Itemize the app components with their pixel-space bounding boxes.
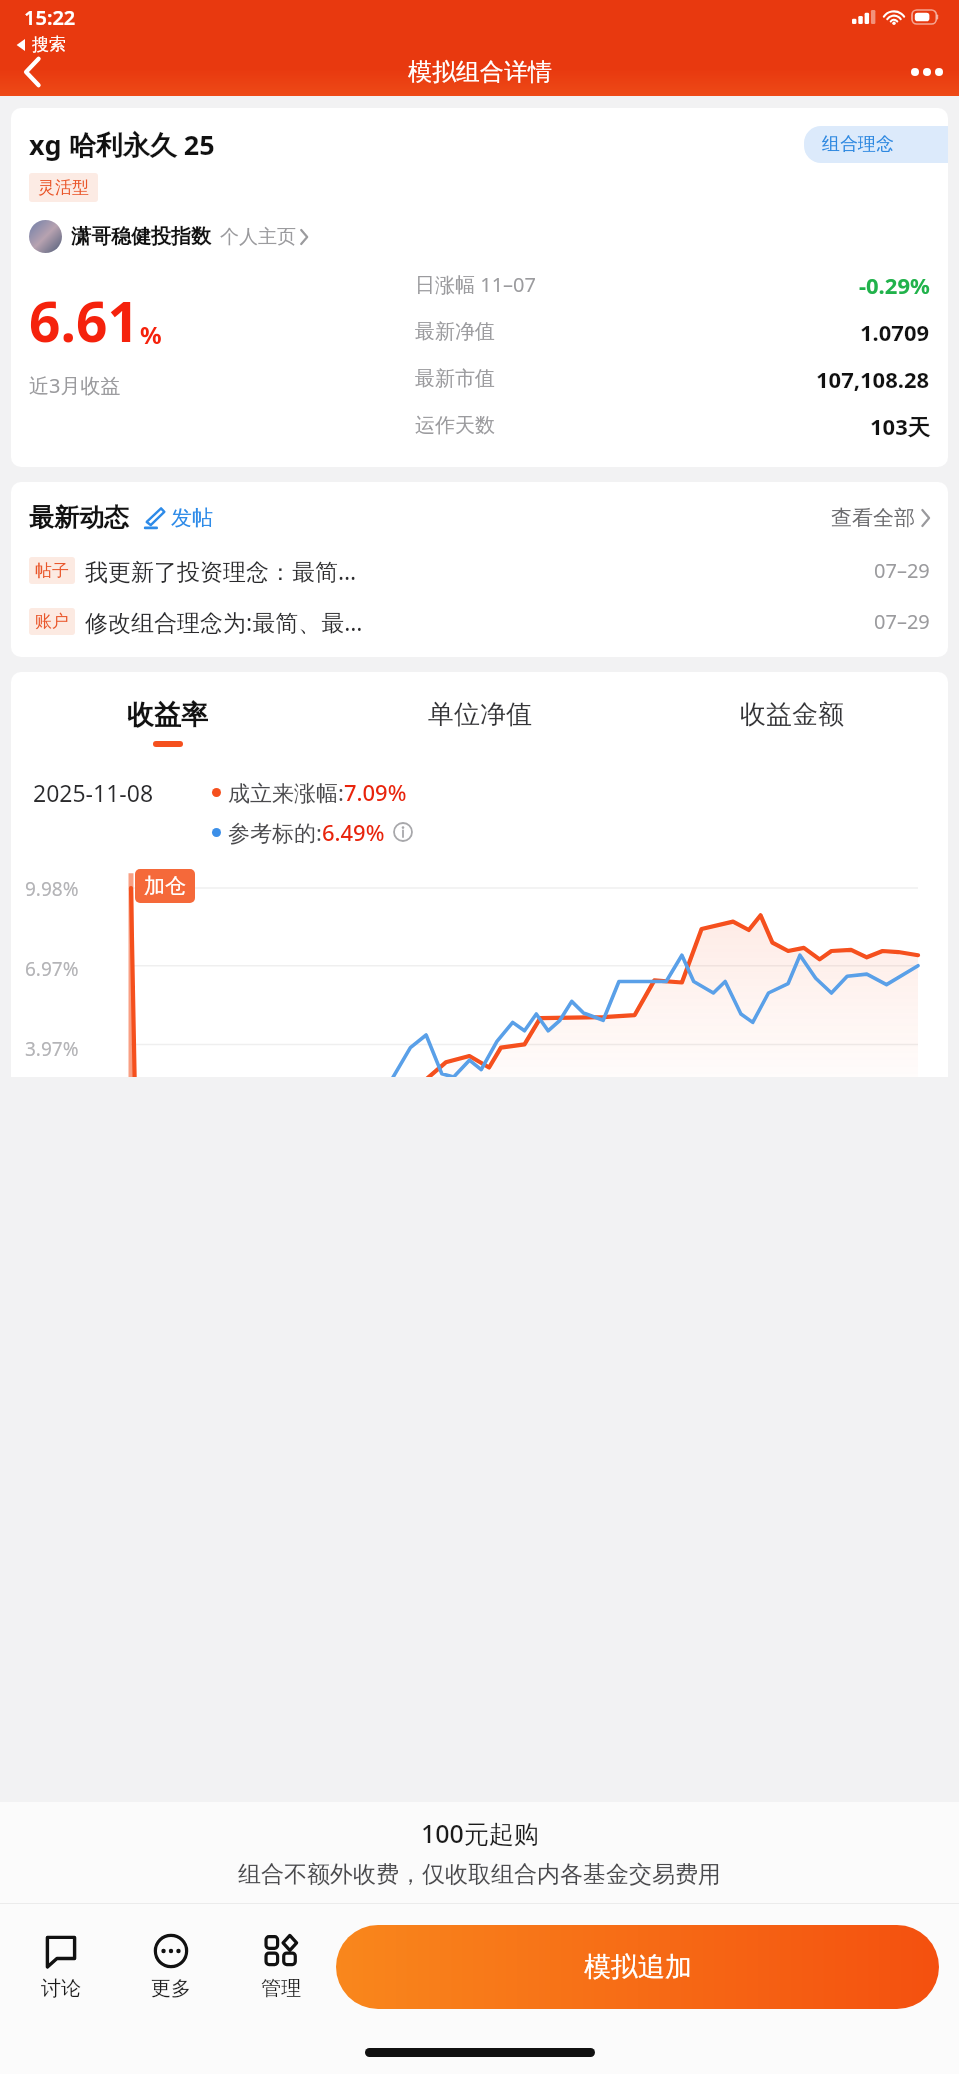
staticText: 参考标的:6.49% bbox=[228, 817, 385, 847]
button[interactable]: 单位净值 bbox=[324, 694, 636, 750]
button[interactable]: xg 哈利永久 25 bbox=[11, 108, 948, 467]
staticText: 讨论 bbox=[41, 1976, 81, 2001]
staticText: 2025-11-08 bbox=[33, 777, 154, 808]
staticText: 模拟组合详情 bbox=[408, 57, 552, 87]
button[interactable]: 账户 bbox=[29, 606, 930, 637]
staticText: 07–29 bbox=[874, 608, 930, 635]
staticText: 3.97% bbox=[25, 1036, 79, 1062]
staticText: % bbox=[140, 318, 162, 351]
staticText: 加仓 bbox=[144, 873, 186, 899]
staticText: 日涨幅 11–07 bbox=[415, 271, 536, 298]
staticText: 收益率 bbox=[127, 698, 208, 732]
staticText: 帖子 bbox=[35, 560, 69, 581]
staticText: 07–29 bbox=[874, 557, 930, 584]
button[interactable]: 管理 bbox=[226, 1928, 336, 2007]
button[interactable]: 讨论 bbox=[6, 1928, 116, 2007]
button[interactable]: 加仓 bbox=[135, 869, 195, 903]
staticText: 最新市值 bbox=[415, 366, 495, 391]
staticText: 收益金额 bbox=[740, 698, 844, 731]
staticText: 最新动态 bbox=[29, 502, 129, 533]
button[interactable]: Back bbox=[0, 48, 64, 96]
button[interactable]: 收益率 bbox=[11, 694, 324, 751]
button[interactable]: 帖子 bbox=[29, 555, 930, 586]
button[interactable]: 更多 bbox=[116, 1928, 226, 2007]
staticText: 107,108.28 bbox=[816, 364, 930, 394]
staticText: -0.29% bbox=[859, 270, 930, 300]
staticText: 我更新了投资理念：最简… bbox=[85, 555, 357, 586]
button[interactable]: 发帖 bbox=[143, 505, 213, 531]
staticText: 组合不额外收费，仅收取组合内各基金交易费用 bbox=[238, 1860, 721, 1889]
staticText: 成立来涨幅:7.09% bbox=[228, 777, 407, 807]
button[interactable]: 组合理念 bbox=[804, 126, 948, 163]
staticText: 搜索 bbox=[32, 34, 66, 55]
staticText: 发帖 bbox=[171, 505, 213, 531]
staticText: 6.97% bbox=[25, 956, 79, 982]
staticText: 最新净值 bbox=[415, 319, 495, 344]
staticText: 100元起购 bbox=[421, 1816, 539, 1850]
button[interactable]: 潇哥稳健投指数 bbox=[29, 220, 308, 253]
staticText: 个人主页 bbox=[220, 225, 296, 249]
staticText: 模拟追加 bbox=[584, 1950, 692, 1984]
staticText: 查看全部 bbox=[831, 505, 915, 531]
staticText: 组合理念 bbox=[822, 133, 894, 156]
staticText: 单位净值 bbox=[428, 698, 532, 731]
button[interactable]: 模拟追加 bbox=[336, 1925, 939, 2009]
staticText: 账户 bbox=[35, 611, 69, 632]
staticText: 1.0709 bbox=[860, 317, 930, 347]
staticText: 9.98% bbox=[25, 876, 79, 902]
button[interactable]: More options bbox=[895, 48, 959, 96]
staticText: xg 哈利永久 25 bbox=[29, 126, 215, 163]
staticText: 6.61 bbox=[29, 283, 139, 358]
staticText: 近3月收益 bbox=[29, 372, 121, 399]
staticText: 潇哥稳健投指数 bbox=[71, 224, 211, 249]
staticText: 管理 bbox=[261, 1976, 301, 2001]
staticText: 灵活型 bbox=[38, 177, 89, 198]
button[interactable]: 查看全部 bbox=[831, 505, 930, 531]
staticText: 修改组合理念为:最简、最… bbox=[85, 606, 363, 637]
staticText: 运作天数 bbox=[415, 413, 495, 438]
button[interactable]: 收益金额 bbox=[636, 694, 948, 750]
staticText: 15:22 bbox=[24, 4, 76, 31]
staticText: 103天 bbox=[870, 411, 930, 441]
staticText: 更多 bbox=[151, 1976, 191, 2001]
